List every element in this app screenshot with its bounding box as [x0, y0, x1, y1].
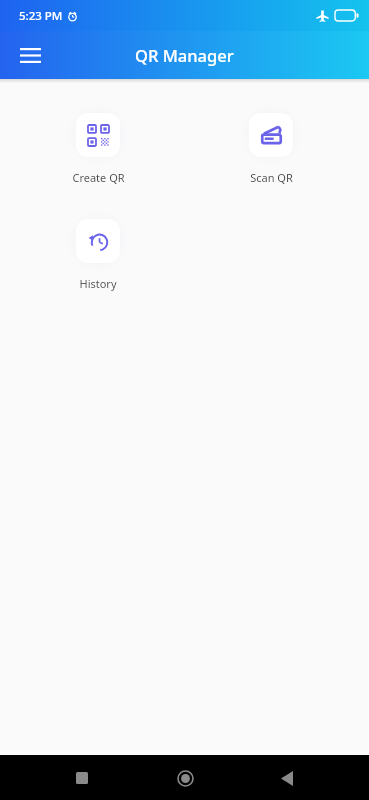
button[interactable]: Create QR	[54, 104, 142, 185]
staticText: QR Manager	[135, 44, 234, 66]
staticText: History	[79, 276, 117, 291]
button[interactable]: Back	[266, 757, 308, 799]
staticText: 5:23 PM	[19, 8, 63, 24]
button[interactable]: Recent apps	[61, 757, 103, 799]
button[interactable]: History	[54, 210, 142, 291]
staticText: Scan QR	[250, 170, 293, 185]
button[interactable]: Scan QR	[227, 104, 315, 185]
staticText: Create QR	[72, 170, 125, 185]
button[interactable]: Home	[164, 757, 206, 799]
button[interactable]: Open navigation menu	[12, 37, 48, 73]
